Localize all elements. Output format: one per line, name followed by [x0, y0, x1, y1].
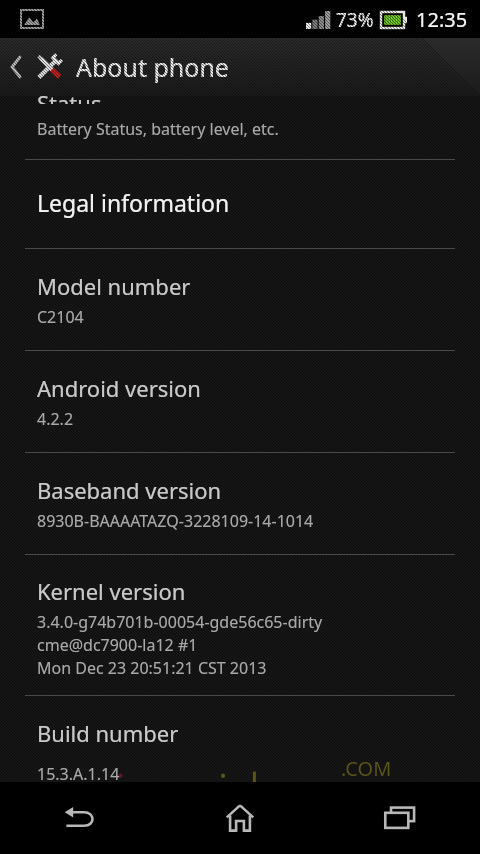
button[interactable]: Recent apps	[320, 782, 480, 854]
button[interactable]: Back	[0, 782, 160, 854]
button[interactable]: Home	[160, 782, 320, 854]
staticText: .COM	[341, 755, 392, 782]
button[interactable]: Android version	[0, 351, 480, 452]
other: Navigate up	[9, 54, 23, 80]
staticText: 12:35	[416, 6, 468, 33]
staticText: guide	[155, 755, 290, 782]
staticText: cme@dc7900-la12 #1	[37, 634, 198, 656]
staticText: Status	[37, 88, 102, 104]
staticText: xperia	[8, 755, 155, 782]
button[interactable]: Build number	[0, 696, 480, 782]
staticText: 15.3.A.1.14	[37, 763, 120, 782]
staticText: Legal information	[37, 187, 230, 218]
staticText: Mon Dec 23 20:51:21 CST 2013	[37, 657, 267, 679]
staticText: Model number	[37, 271, 191, 301]
staticText: 3.4.0-g74b701b-00054-gde56c65-dirty	[37, 611, 323, 633]
staticText: Android version	[37, 373, 201, 403]
staticText: About phone	[76, 50, 229, 84]
staticText: Build number	[37, 718, 179, 748]
staticText: Kernel version	[37, 576, 186, 606]
staticText: Battery Status, battery level, etc.	[37, 118, 279, 140]
other: Screenshot captured	[21, 8, 43, 30]
button[interactable]: Status	[0, 96, 480, 159]
staticText: 73%	[336, 7, 374, 33]
button[interactable]: Model number	[0, 249, 480, 350]
staticText: C2104	[37, 306, 84, 328]
button[interactable]: Legal information	[0, 160, 480, 248]
staticText: 4.2.2	[37, 408, 74, 430]
button[interactable]: Baseband version	[0, 453, 480, 554]
button[interactable]: Navigate up	[0, 38, 480, 96]
staticText: Baseband version	[37, 475, 222, 505]
button[interactable]: Kernel version	[0, 555, 480, 695]
staticText: 8930B-BAAAATAZQ-3228109-14-1014	[37, 510, 314, 532]
